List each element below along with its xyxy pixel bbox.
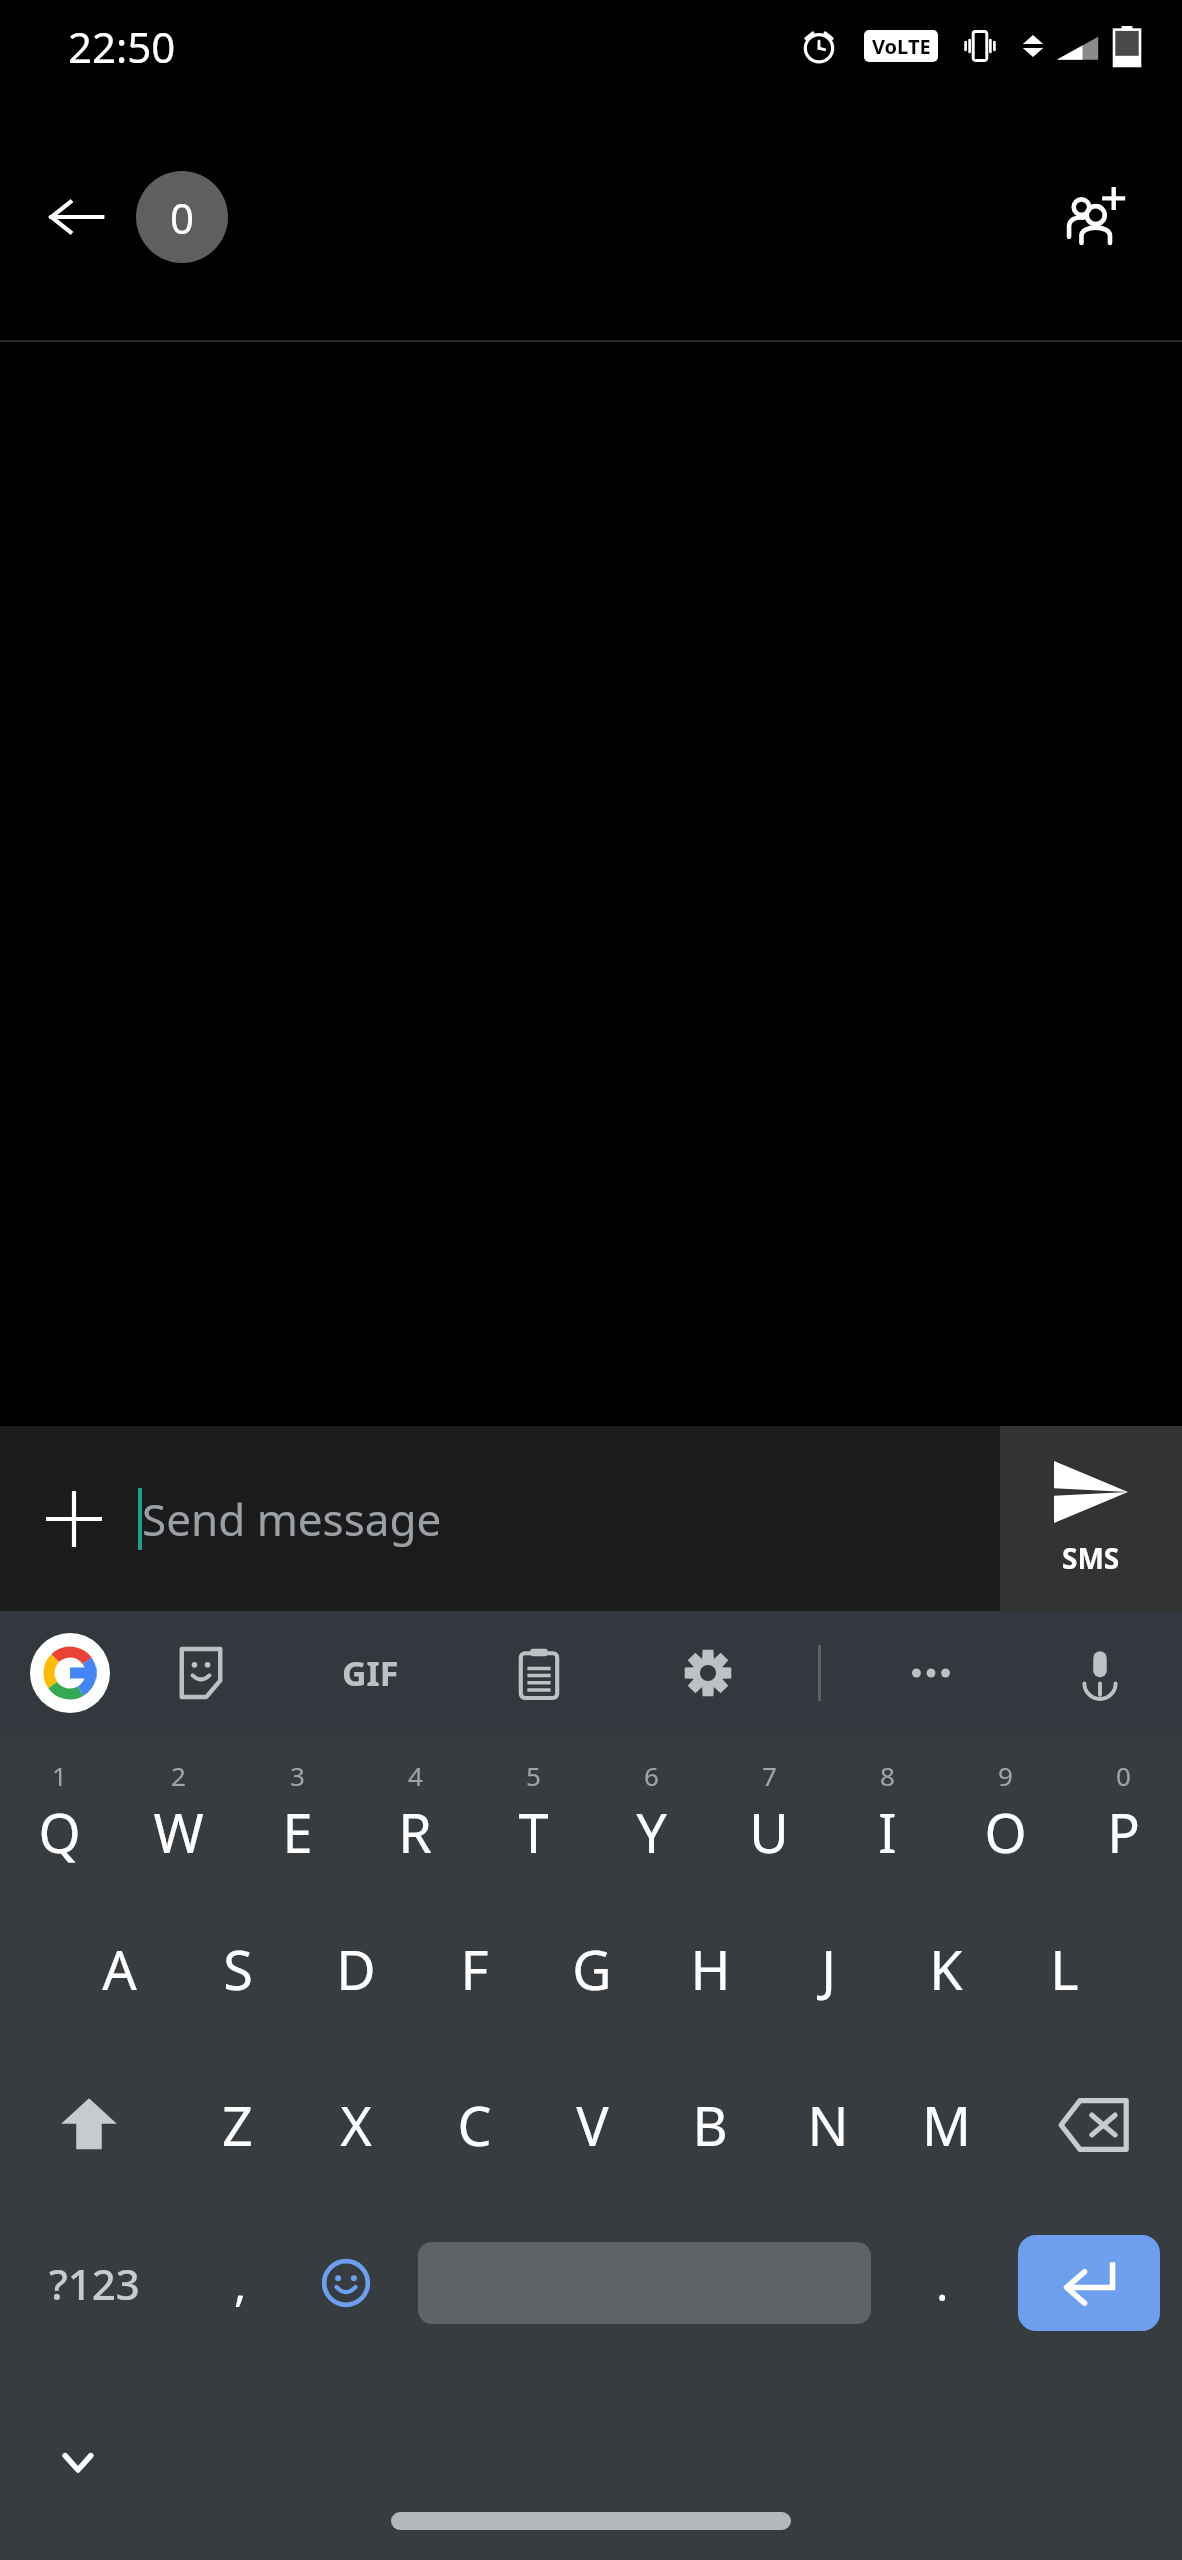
button[interactable]: X bbox=[297, 2047, 415, 2203]
staticText: 1 bbox=[52, 1758, 67, 1793]
button[interactable]: B bbox=[651, 2047, 769, 2203]
staticText: ?123 bbox=[49, 2255, 140, 2312]
staticText: Z bbox=[222, 2088, 253, 2162]
button[interactable]: C bbox=[415, 2047, 533, 2203]
button[interactable]: H bbox=[651, 1891, 769, 2047]
staticText: , bbox=[234, 2252, 247, 2315]
staticText: Q bbox=[38, 1795, 81, 1869]
staticText: SMS bbox=[1062, 1539, 1120, 1577]
staticText: D bbox=[336, 1932, 376, 2006]
button[interactable]: 8 bbox=[828, 1735, 946, 1891]
staticText: T bbox=[518, 1795, 549, 1869]
staticText: J bbox=[821, 1932, 836, 2006]
button[interactable]: 1 bbox=[0, 1735, 119, 1891]
staticText: L bbox=[1050, 1932, 1079, 2006]
button[interactable]: F bbox=[415, 1891, 533, 2047]
button[interactable]: GIF bbox=[328, 1631, 412, 1715]
button[interactable]: Google bbox=[28, 1631, 112, 1715]
staticText: N bbox=[807, 2088, 849, 2162]
button[interactable]: . bbox=[890, 2203, 995, 2363]
button[interactable]: 2 bbox=[119, 1735, 238, 1891]
button[interactable]: Z bbox=[178, 2047, 297, 2203]
button[interactable]: More options bbox=[889, 1631, 973, 1715]
staticText: 4 bbox=[408, 1758, 423, 1793]
button[interactable]: 7 bbox=[710, 1735, 828, 1891]
button[interactable]: Voice input bbox=[1058, 1631, 1142, 1715]
button[interactable]: A bbox=[60, 1891, 179, 2047]
button[interactable]: Stickers bbox=[159, 1631, 243, 1715]
staticText: P bbox=[1107, 1795, 1140, 1869]
button[interactable]: Add attachment bbox=[24, 1469, 124, 1569]
button[interactable]: 3 bbox=[238, 1735, 356, 1891]
staticText: F bbox=[460, 1932, 489, 2006]
button[interactable]: 4 bbox=[356, 1735, 474, 1891]
staticText: 22:50 bbox=[68, 18, 176, 75]
staticText: 6 bbox=[644, 1758, 659, 1793]
staticText: GIF bbox=[342, 1650, 399, 1696]
button[interactable]: Send message bbox=[138, 1426, 1000, 1611]
staticText: W bbox=[153, 1795, 204, 1869]
staticText: O bbox=[984, 1795, 1027, 1869]
staticText: VoLTE bbox=[872, 33, 931, 60]
button[interactable]: Hide keyboard bbox=[40, 2424, 116, 2500]
button[interactable]: N bbox=[769, 2047, 887, 2203]
button[interactable]: Back bbox=[22, 163, 130, 271]
button[interactable]: Enter bbox=[995, 2203, 1182, 2363]
button[interactable]: D bbox=[297, 1891, 415, 2047]
staticText: R bbox=[398, 1795, 432, 1869]
staticText: Send message bbox=[142, 1489, 442, 1549]
staticText: 9 bbox=[998, 1758, 1013, 1793]
staticText: X bbox=[340, 2088, 372, 2162]
staticText: K bbox=[929, 1932, 963, 2006]
button[interactable]: Clipboard bbox=[497, 1631, 581, 1715]
button[interactable]: 9 bbox=[946, 1735, 1064, 1891]
staticText: A bbox=[102, 1932, 137, 2006]
button[interactable]: , bbox=[188, 2203, 293, 2363]
button[interactable]: G bbox=[533, 1891, 651, 2047]
button[interactable]: Backspace bbox=[1005, 2047, 1182, 2203]
staticText: . bbox=[936, 2252, 949, 2315]
staticText: M bbox=[922, 2088, 971, 2162]
staticText: E bbox=[282, 1795, 313, 1869]
staticText: 0 bbox=[1116, 1758, 1131, 1793]
button[interactable]: J bbox=[769, 1891, 887, 2047]
staticText: 7 bbox=[762, 1758, 777, 1793]
staticText: 8 bbox=[880, 1758, 895, 1793]
staticText: B bbox=[692, 2088, 728, 2162]
staticText: C bbox=[457, 2088, 492, 2162]
staticText: I bbox=[878, 1795, 897, 1869]
button[interactable]: Settings bbox=[666, 1631, 750, 1715]
staticText: 0 bbox=[170, 189, 195, 246]
button[interactable]: M bbox=[887, 2047, 1005, 2203]
staticText: S bbox=[223, 1932, 253, 2006]
button[interactable]: V bbox=[533, 2047, 651, 2203]
staticText: 3 bbox=[290, 1758, 305, 1793]
staticText: U bbox=[749, 1795, 789, 1869]
button[interactable]: 0 bbox=[136, 171, 228, 263]
staticText: Y bbox=[636, 1795, 667, 1869]
button[interactable]: Add people bbox=[1038, 163, 1146, 271]
staticText: H bbox=[690, 1932, 731, 2006]
button[interactable]: Shift bbox=[0, 2047, 178, 2203]
button[interactable]: 0 bbox=[1064, 1735, 1182, 1891]
button[interactable]: ?123 bbox=[0, 2203, 188, 2363]
staticText: 5 bbox=[526, 1758, 541, 1793]
button[interactable]: S bbox=[179, 1891, 297, 2047]
button[interactable]: Space bbox=[398, 2203, 890, 2363]
button[interactable]: 6 bbox=[592, 1735, 710, 1891]
staticText: 2 bbox=[171, 1758, 186, 1793]
button[interactable]: K bbox=[887, 1891, 1005, 2047]
button[interactable]: 5 bbox=[474, 1735, 592, 1891]
staticText: G bbox=[572, 1932, 612, 2006]
button[interactable]: L bbox=[1005, 1891, 1123, 2047]
staticText: V bbox=[576, 2088, 609, 2162]
button[interactable]: Emoji bbox=[293, 2203, 398, 2363]
button[interactable]: Send SMS bbox=[1000, 1426, 1182, 1611]
